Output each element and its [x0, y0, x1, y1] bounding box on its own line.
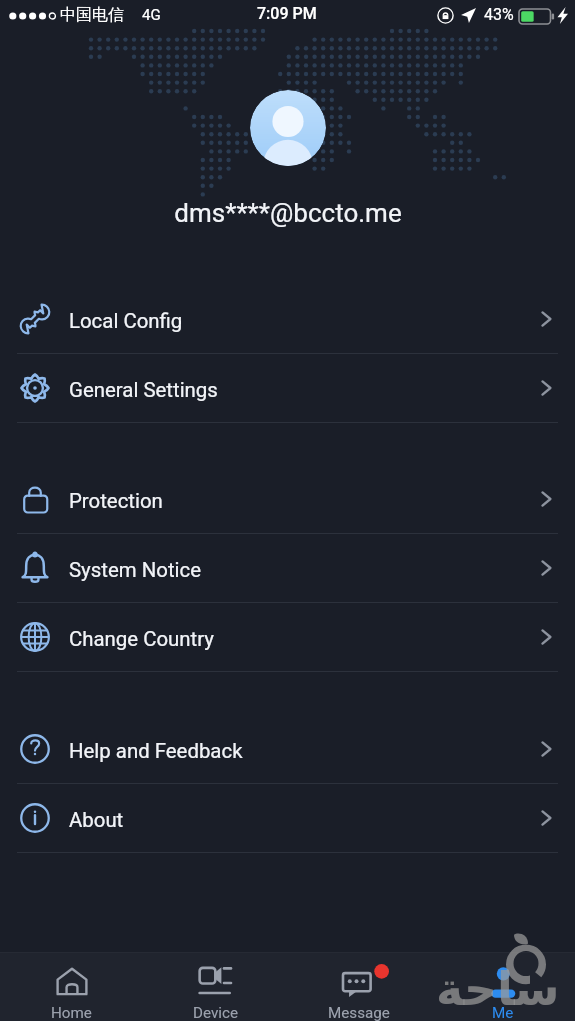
staticText: 4G [142, 6, 161, 24]
staticText: Me [492, 1004, 514, 1021]
staticText: Home [51, 1004, 92, 1021]
staticText: Change Country [69, 627, 214, 651]
staticText: Message [328, 1004, 390, 1021]
staticText: ساحة [436, 962, 560, 1016]
button[interactable]: Home [0, 953, 143, 1021]
button[interactable]: Message [287, 953, 431, 1021]
button[interactable]: Profile avatar [250, 90, 326, 166]
button[interactable]: Device [143, 953, 287, 1021]
staticText: Protection [69, 489, 163, 513]
staticText: Device [193, 1004, 238, 1021]
staticText: Local Config [69, 309, 183, 333]
button[interactable]: Me [431, 953, 575, 1021]
staticText: System Notice [69, 558, 201, 582]
button[interactable]: Protection [0, 465, 575, 533]
button[interactable]: About [0, 784, 575, 852]
staticText: dms****@bccto.me [174, 198, 402, 228]
button[interactable]: General Settings [0, 354, 575, 422]
staticText: 中国电信 [60, 5, 124, 25]
button[interactable]: Change Country [0, 603, 575, 671]
staticText: Help and Feedback [69, 739, 243, 763]
button[interactable]: Local Config [0, 285, 575, 353]
staticText: 7:09 PM [257, 4, 317, 23]
staticText: About [69, 808, 124, 832]
staticText: General Settings [69, 378, 218, 402]
button[interactable]: Help and Feedback [0, 715, 575, 783]
button[interactable]: System Notice [0, 534, 575, 602]
staticText: 43% [484, 5, 514, 24]
